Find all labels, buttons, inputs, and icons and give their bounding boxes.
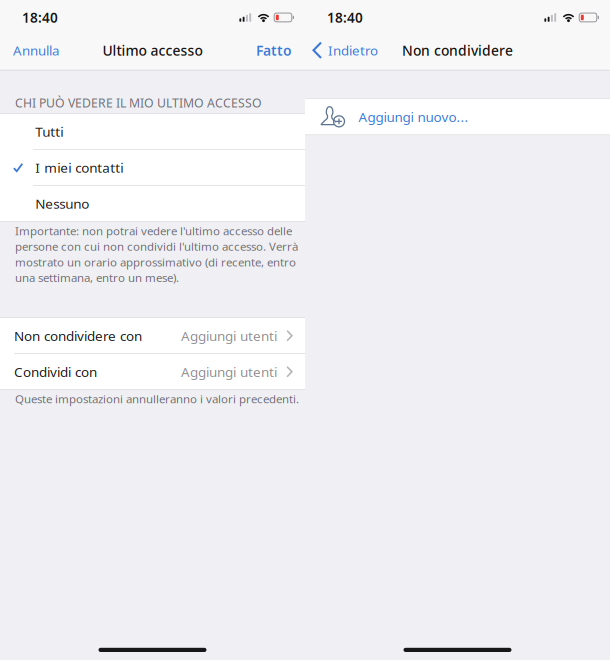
button[interactable]: Annulla xyxy=(0,30,65,70)
staticText: Fatto xyxy=(256,41,292,60)
staticText: Nessuno xyxy=(35,194,89,213)
staticText: Importante: non potrai vedere l'ultimo a… xyxy=(15,223,298,285)
staticText: 18:40 xyxy=(327,8,363,27)
staticText: Indietro xyxy=(328,41,378,59)
button[interactable]: Nessuno xyxy=(0,186,305,221)
staticText: Non condividere xyxy=(402,41,513,60)
staticText: Annulla xyxy=(13,41,59,59)
staticText: Tutti xyxy=(35,122,63,141)
button[interactable]: Indietro xyxy=(305,30,384,70)
staticText: Non condividere con xyxy=(14,327,142,345)
staticText: Aggiungi utenti xyxy=(181,327,277,345)
staticText: 18:40 xyxy=(22,8,58,27)
staticText: CHI PUÒ VEDERE IL MIO ULTIMO ACCESSO xyxy=(15,94,262,111)
button[interactable]: Fatto xyxy=(250,30,305,70)
staticText: Aggiungi nuovo... xyxy=(358,108,468,126)
button[interactable]: I miei contatti xyxy=(0,150,305,185)
staticText: Ultimo accesso xyxy=(102,41,202,60)
button[interactable]: Condividi con xyxy=(0,354,305,389)
button[interactable]: Non condividere con xyxy=(0,318,305,353)
staticText: Aggiungi utenti xyxy=(181,363,277,381)
button[interactable]: Aggiungi nuovo... xyxy=(305,99,610,134)
button[interactable]: Tutti xyxy=(0,114,305,149)
staticText: Condividi con xyxy=(14,363,97,381)
staticText: Queste impostazioni annulleranno i valor… xyxy=(15,391,299,407)
staticText: I miei contatti xyxy=(35,158,123,177)
